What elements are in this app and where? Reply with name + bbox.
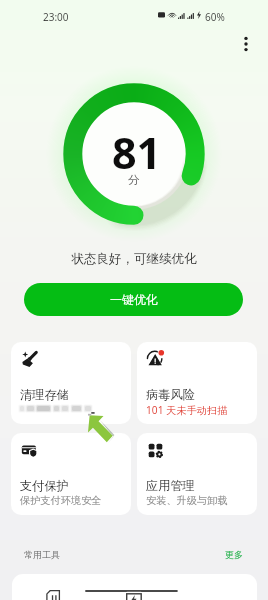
staticText: 状态良好，可继续优化 bbox=[0, 251, 268, 267]
staticText: 81 bbox=[112, 123, 162, 182]
button[interactable]: 病毒风险 bbox=[137, 342, 257, 424]
button[interactable]: 清理存储 bbox=[11, 342, 131, 424]
staticText: 应用管理 bbox=[146, 478, 195, 493]
button[interactable]: 应用管理 bbox=[137, 433, 257, 515]
staticText: 保护支付环境安全 bbox=[20, 494, 102, 507]
staticText: 病毒风险 bbox=[146, 387, 195, 402]
staticText: 更多 bbox=[225, 549, 243, 560]
staticText: 清理存储 bbox=[20, 387, 69, 402]
staticText: 23:00 bbox=[43, 10, 69, 24]
staticText: 分 bbox=[128, 173, 140, 187]
button[interactable]: 支付保护 bbox=[11, 433, 131, 515]
staticText: 101 天未手动扫描 bbox=[146, 403, 228, 417]
button[interactable]: 更多 bbox=[225, 549, 243, 560]
staticText: 安装、升级与卸载 bbox=[146, 494, 228, 507]
staticText: 常用工具 bbox=[24, 549, 60, 560]
staticText: 支付保护 bbox=[20, 478, 69, 493]
staticText: 60% bbox=[205, 10, 225, 24]
button[interactable]: 一键优化 bbox=[24, 283, 243, 316]
staticText: 一键优化 bbox=[110, 292, 158, 307]
button[interactable]: More options bbox=[232, 30, 260, 58]
